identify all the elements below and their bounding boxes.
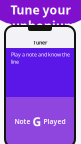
staticText: Tune your <box>10 2 70 18</box>
staticText: euphonium <box>5 18 76 34</box>
staticText: Play a note and know the line <box>11 51 70 65</box>
staticText: Played <box>43 117 65 126</box>
staticText: Tuner <box>33 39 47 46</box>
staticText: Note <box>14 117 30 126</box>
staticText: G <box>32 113 41 129</box>
